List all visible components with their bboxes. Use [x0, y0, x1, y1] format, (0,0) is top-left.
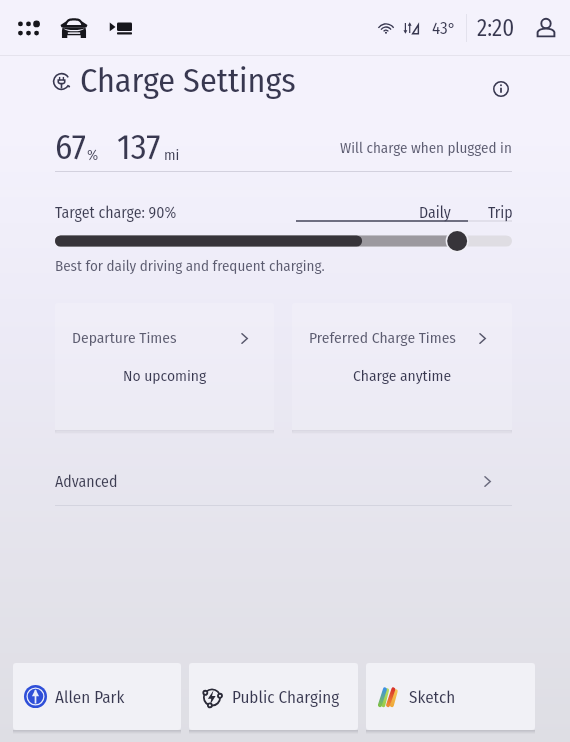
staticText: Target charge: 90% — [55, 203, 177, 222]
staticText: Will charge when plugged in — [340, 139, 512, 157]
staticText: Best for daily driving and frequent char… — [55, 257, 325, 275]
button[interactable]: Media — [97, 5, 143, 51]
button[interactable]: Apps — [5, 5, 51, 51]
staticText: % — [87, 146, 99, 164]
staticText: Allen Park — [55, 687, 125, 707]
button[interactable]: Profile — [529, 11, 563, 45]
staticText: Daily — [419, 203, 451, 222]
staticText: Sketch — [409, 687, 456, 707]
button[interactable]: Info — [484, 72, 518, 106]
button[interactable]: Public Charging — [189, 663, 358, 730]
staticText: Preferred Charge Times — [309, 329, 456, 348]
button[interactable]: Preferred Charge Times — [292, 303, 512, 432]
staticText: 2:20 — [477, 14, 515, 42]
staticText: Charge anytime — [353, 367, 452, 386]
staticText: 43° — [432, 18, 456, 38]
button[interactable]: Allen Park — [13, 663, 181, 730]
staticText: Public Charging — [232, 687, 340, 707]
button[interactable]: Trip — [472, 200, 525, 224]
button[interactable]: Daily — [404, 200, 466, 224]
staticText: 137 — [117, 126, 161, 168]
staticText: Advanced — [55, 472, 118, 491]
button[interactable]: Target charge slider — [55, 230, 512, 252]
button[interactable]: Sketch — [366, 663, 535, 730]
staticText: Charge Settings — [80, 60, 296, 101]
button[interactable]: Advanced — [55, 459, 512, 503]
staticText: 67 — [55, 126, 86, 168]
button[interactable]: Vehicle — [51, 5, 97, 51]
staticText: Trip — [488, 203, 513, 222]
button[interactable]: Departure Times — [55, 303, 274, 432]
staticText: mi — [164, 146, 180, 164]
staticText: No upcoming — [123, 367, 207, 386]
staticText: Departure Times — [72, 329, 177, 348]
